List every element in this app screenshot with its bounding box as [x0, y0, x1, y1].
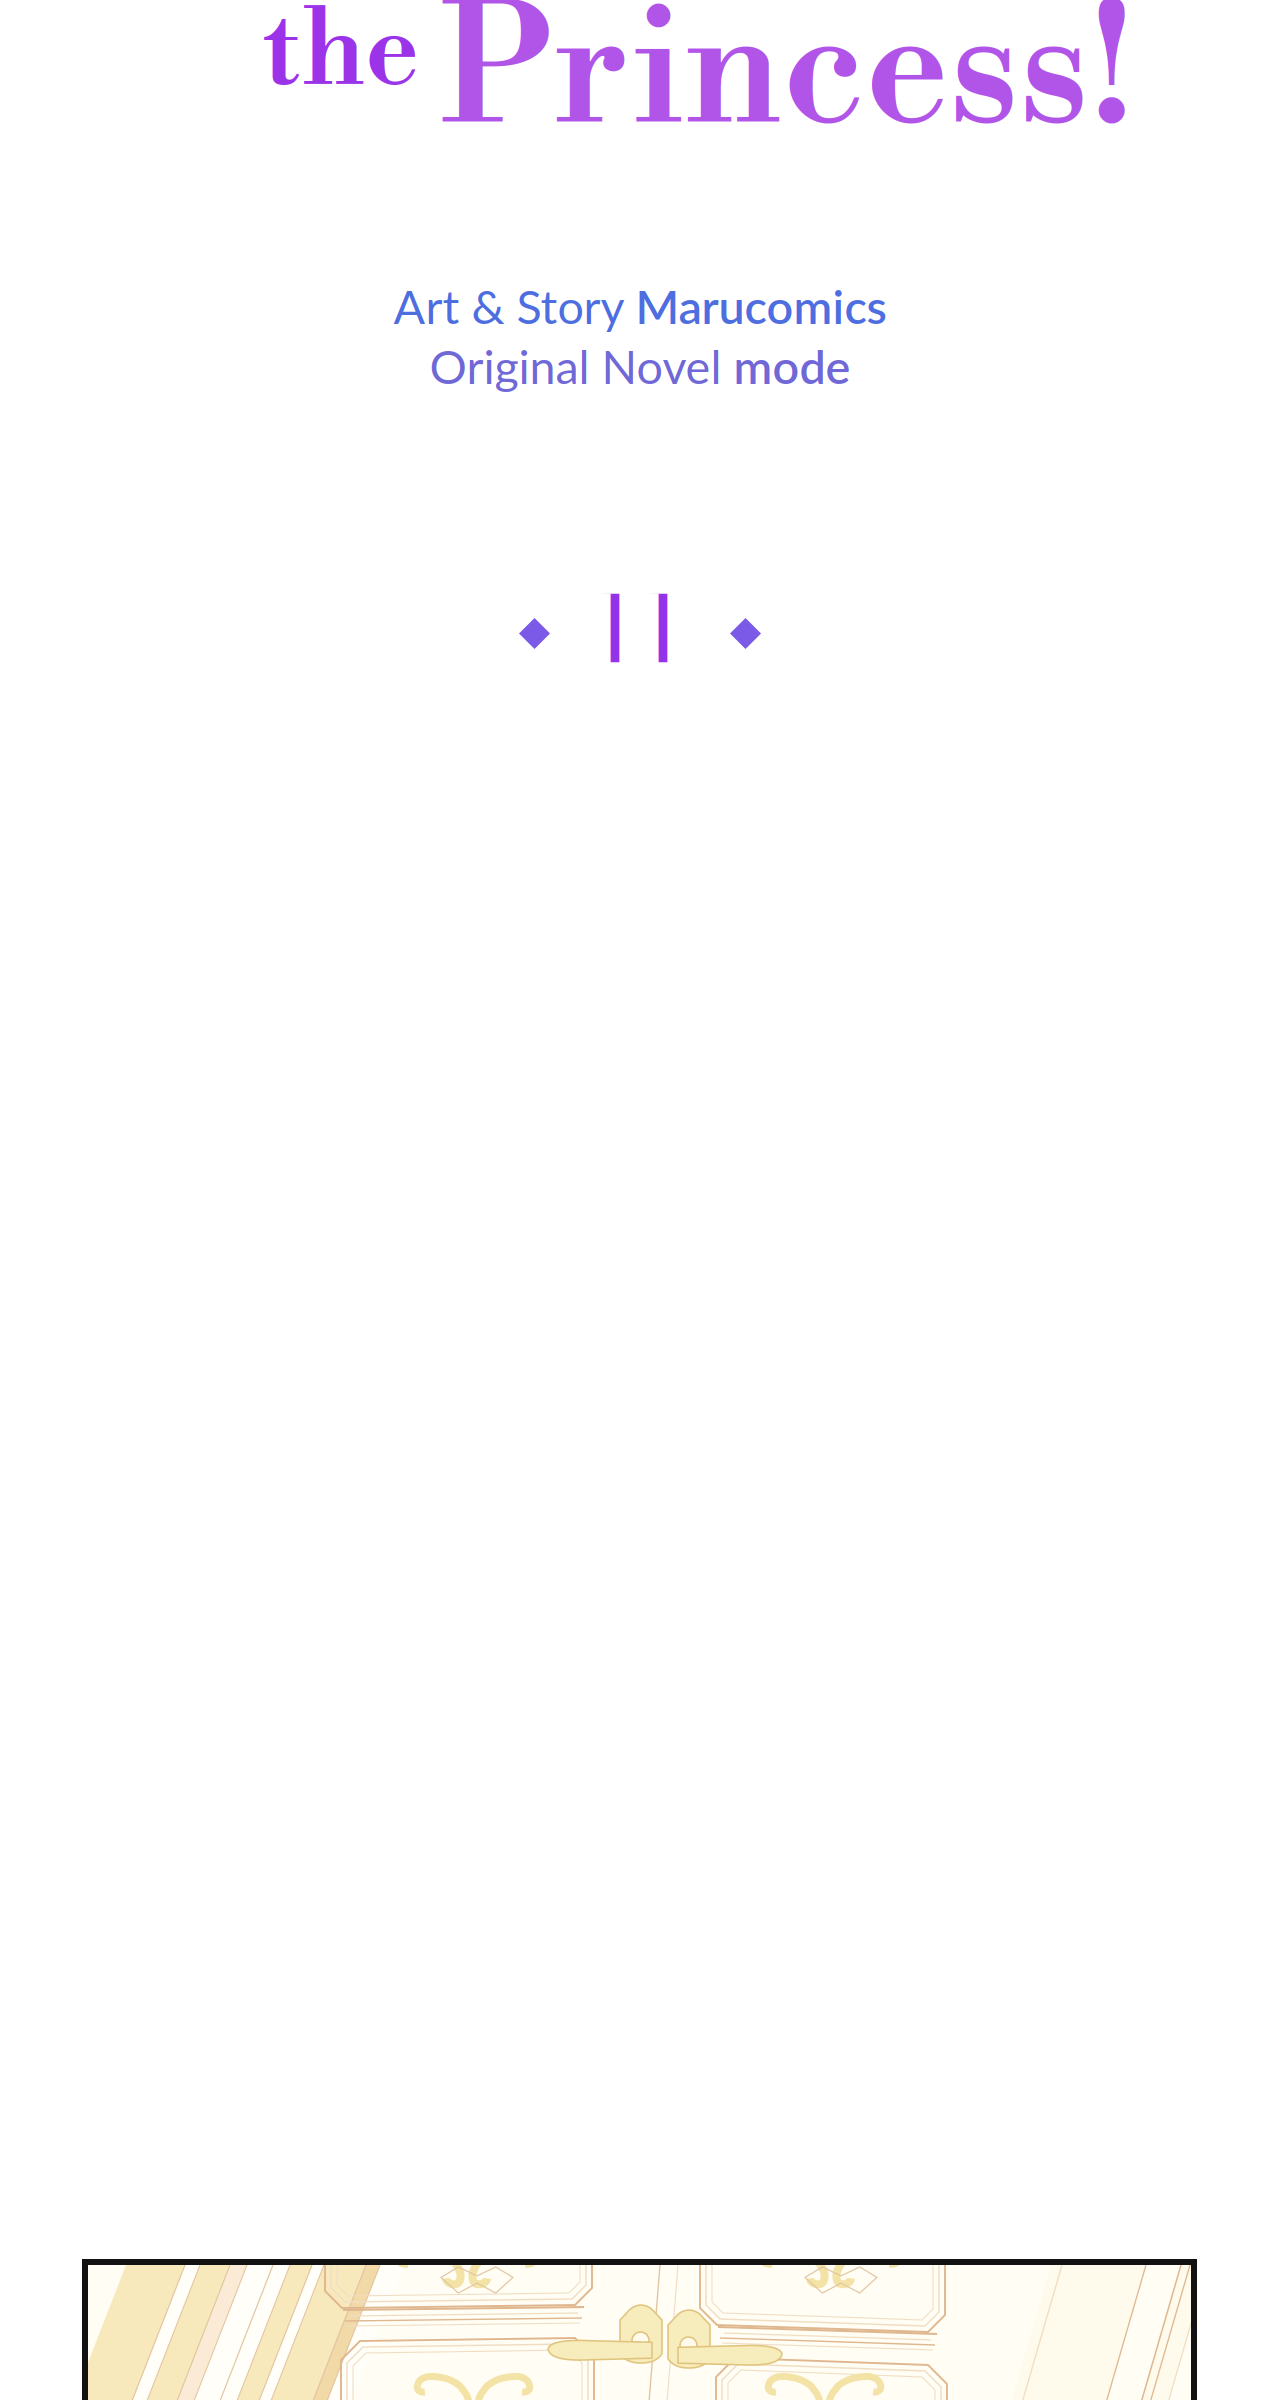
staticText: mode — [733, 338, 850, 394]
staticText: Princess! — [440, 0, 1134, 174]
staticText: Art & Story — [393, 278, 635, 334]
staticText: Original Novel — [429, 338, 733, 394]
staticText: 11 — [594, 559, 682, 699]
staticText: the — [263, 0, 419, 118]
staticText: Marucomics — [635, 278, 886, 334]
